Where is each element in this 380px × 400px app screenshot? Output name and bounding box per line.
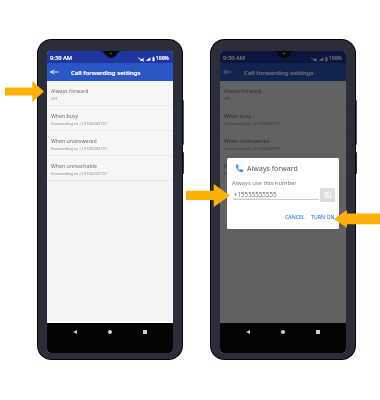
staticText: When unreachable [51, 162, 97, 169]
staticText: When unanswered [224, 137, 270, 144]
button[interactable]: Always forward [47, 81, 173, 105]
staticText: CANCEL [285, 213, 305, 220]
button[interactable]: Back [68, 325, 82, 339]
staticText: Always use this number [232, 179, 297, 187]
staticText: 100% [329, 55, 342, 62]
button[interactable]: Navigate up [48, 66, 60, 78]
staticText: Call forwarding settings [71, 68, 141, 76]
button[interactable]: TURN ON [311, 213, 335, 220]
button[interactable]: When unreachable [47, 156, 173, 180]
staticText: When unanswered [51, 137, 97, 144]
button[interactable]: When unanswered [220, 131, 346, 155]
button[interactable]: Back [241, 325, 255, 339]
staticText: 9:30 AM [223, 54, 246, 62]
button[interactable]: When unreachable [220, 156, 346, 180]
staticText: Off [224, 96, 231, 102]
staticText: TURN ON [311, 213, 335, 220]
staticText: Forwarding to +15105242191 [51, 121, 108, 127]
button[interactable]: Home [103, 325, 117, 339]
staticText: When busy [51, 112, 79, 119]
staticText: Forwarding to +15105242191 [224, 121, 281, 127]
staticText: When busy [224, 112, 252, 119]
staticText: Always forward [224, 87, 262, 94]
staticText: Always forward [51, 87, 89, 94]
staticText: 9:30 AM [50, 54, 73, 62]
button[interactable]: When busy [220, 106, 346, 130]
staticText: Forwarding to +15105242191 [51, 146, 108, 152]
staticText: When unreachable [224, 162, 270, 169]
staticText: Forwarding to +15105242191 [224, 146, 281, 152]
staticText: 100% [156, 55, 169, 62]
button[interactable]: Always forward [220, 81, 346, 105]
staticText: Call forwarding settings [244, 68, 314, 76]
button[interactable]: When busy [47, 106, 173, 130]
button[interactable]: CANCEL [285, 213, 305, 220]
button[interactable]: Navigate up [221, 66, 233, 78]
staticText: Forwarding to +15105242191 [224, 171, 281, 177]
button[interactable]: When unanswered [47, 131, 173, 155]
staticText: Off [51, 96, 58, 102]
staticText: Always forward [247, 164, 298, 173]
button[interactable]: Recents [138, 325, 152, 339]
button[interactable]: Recents [311, 325, 325, 339]
button[interactable]: Home [276, 325, 290, 339]
staticText: Forwarding to +15105242191 [51, 171, 108, 177]
button[interactable]: Pick contact [320, 188, 335, 202]
staticText: +15555555555 [234, 190, 277, 198]
